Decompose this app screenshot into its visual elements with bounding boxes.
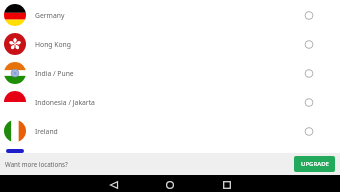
staticText: Hong Kong: [35, 40, 299, 49]
button[interactable]: Home: [157, 177, 183, 192]
staticText: Germany: [35, 11, 299, 20]
button[interactable]: Germany: [0, 0, 340, 29]
button[interactable]: Hong Kong: [0, 29, 340, 58]
button[interactable]: Select Indonesia / Jakarta: [299, 92, 319, 112]
button[interactable]: Select Germany: [299, 5, 319, 25]
button[interactable]: UPGRADE: [294, 156, 335, 172]
button[interactable]: Select Hong Kong: [299, 34, 319, 54]
button[interactable]: Recents: [214, 177, 240, 192]
button[interactable]: Indonesia / Jakarta: [0, 87, 340, 116]
button[interactable]: Back: [100, 177, 126, 192]
staticText: Indonesia / Jakarta: [35, 98, 299, 107]
staticText: UPGRADE: [301, 160, 329, 168]
staticText: India / Pune: [35, 69, 299, 78]
staticText: Want more locations?: [5, 160, 294, 168]
button[interactable]: India / Pune: [0, 58, 340, 87]
staticText: Ireland: [35, 127, 299, 136]
button[interactable]: Select India / Pune: [299, 63, 319, 83]
button[interactable]: Select Ireland: [299, 121, 319, 141]
button[interactable]: Ireland: [0, 116, 340, 145]
